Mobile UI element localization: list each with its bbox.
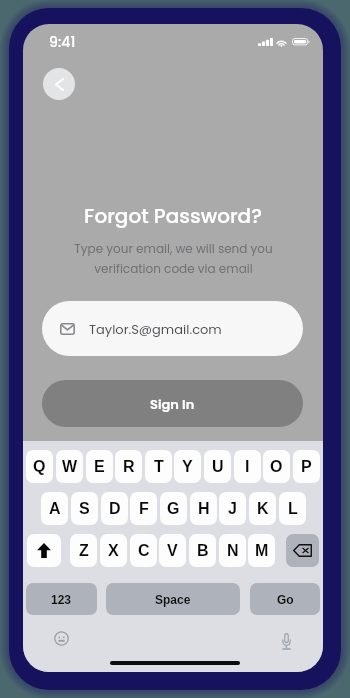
- button[interactable]: T: [145, 450, 172, 483]
- button[interactable]: Shift: [27, 534, 61, 567]
- staticText: O: [270, 458, 283, 476]
- button[interactable]: P: [293, 450, 320, 483]
- staticText: E: [94, 458, 105, 476]
- button[interactable]: U: [204, 450, 231, 483]
- staticText: N: [227, 542, 239, 560]
- button[interactable]: I: [234, 450, 261, 483]
- button[interactable]: Space: [106, 583, 240, 615]
- button[interactable]: Taylor.S@gmail.com: [42, 301, 303, 356]
- button[interactable]: Sign In: [42, 380, 303, 427]
- button[interactable]: G: [160, 492, 187, 525]
- button[interactable]: S: [71, 492, 98, 525]
- button[interactable]: V: [159, 534, 186, 567]
- button[interactable]: Emoji: [54, 631, 69, 646]
- button[interactable]: N: [219, 534, 246, 567]
- staticText: B: [197, 542, 209, 560]
- staticText: M: [255, 542, 269, 560]
- staticText: S: [79, 500, 90, 518]
- button[interactable]: D: [101, 492, 128, 525]
- staticText: K: [257, 500, 269, 518]
- button[interactable]: W: [56, 450, 83, 483]
- staticText: Type your email, we will send you verifi…: [74, 240, 273, 277]
- button[interactable]: C: [130, 534, 157, 567]
- button[interactable]: J: [219, 492, 246, 525]
- staticText: I: [245, 458, 250, 476]
- staticText: A: [49, 500, 61, 518]
- button[interactable]: E: [86, 450, 113, 483]
- staticText: Go: [277, 593, 294, 606]
- staticText: Taylor.S@gmail.com: [89, 320, 222, 338]
- button[interactable]: O: [263, 450, 290, 483]
- staticText: G: [167, 500, 180, 518]
- staticText: Forgot Password?: [84, 202, 262, 230]
- staticText: X: [108, 542, 119, 560]
- staticText: Y: [182, 458, 193, 476]
- button[interactable]: R: [115, 450, 142, 483]
- button[interactable]: H: [190, 492, 217, 525]
- staticText: T: [154, 458, 164, 476]
- button[interactable]: B: [189, 534, 216, 567]
- button[interactable]: Microphone: [281, 633, 291, 650]
- staticText: Z: [79, 542, 89, 560]
- button[interactable]: Backspace: [286, 534, 319, 567]
- button[interactable]: M: [248, 534, 275, 567]
- button[interactable]: X: [100, 534, 127, 567]
- staticText: 9:41: [49, 32, 76, 52]
- staticText: U: [212, 458, 224, 476]
- staticText: P: [301, 458, 312, 476]
- button[interactable]: F: [130, 492, 157, 525]
- staticText: L: [288, 500, 298, 518]
- staticText: R: [123, 458, 135, 476]
- staticText: F: [139, 500, 149, 518]
- button[interactable]: Back: [43, 68, 75, 100]
- button[interactable]: L: [279, 492, 306, 525]
- button[interactable]: Go: [250, 583, 320, 615]
- button[interactable]: A: [41, 492, 68, 525]
- staticText: Sign In: [150, 395, 195, 413]
- staticText: C: [138, 542, 150, 560]
- button[interactable]: K: [249, 492, 276, 525]
- button[interactable]: Y: [174, 450, 201, 483]
- button[interactable]: Z: [70, 534, 97, 567]
- staticText: Q: [33, 458, 46, 476]
- staticText: V: [167, 542, 178, 560]
- staticText: W: [62, 458, 78, 476]
- staticText: 123: [51, 593, 72, 606]
- button[interactable]: 123: [26, 583, 97, 615]
- staticText: J: [228, 500, 237, 518]
- staticText: Space: [155, 593, 191, 606]
- button[interactable]: Q: [26, 450, 53, 483]
- staticText: D: [109, 500, 121, 518]
- staticText: H: [198, 500, 210, 518]
